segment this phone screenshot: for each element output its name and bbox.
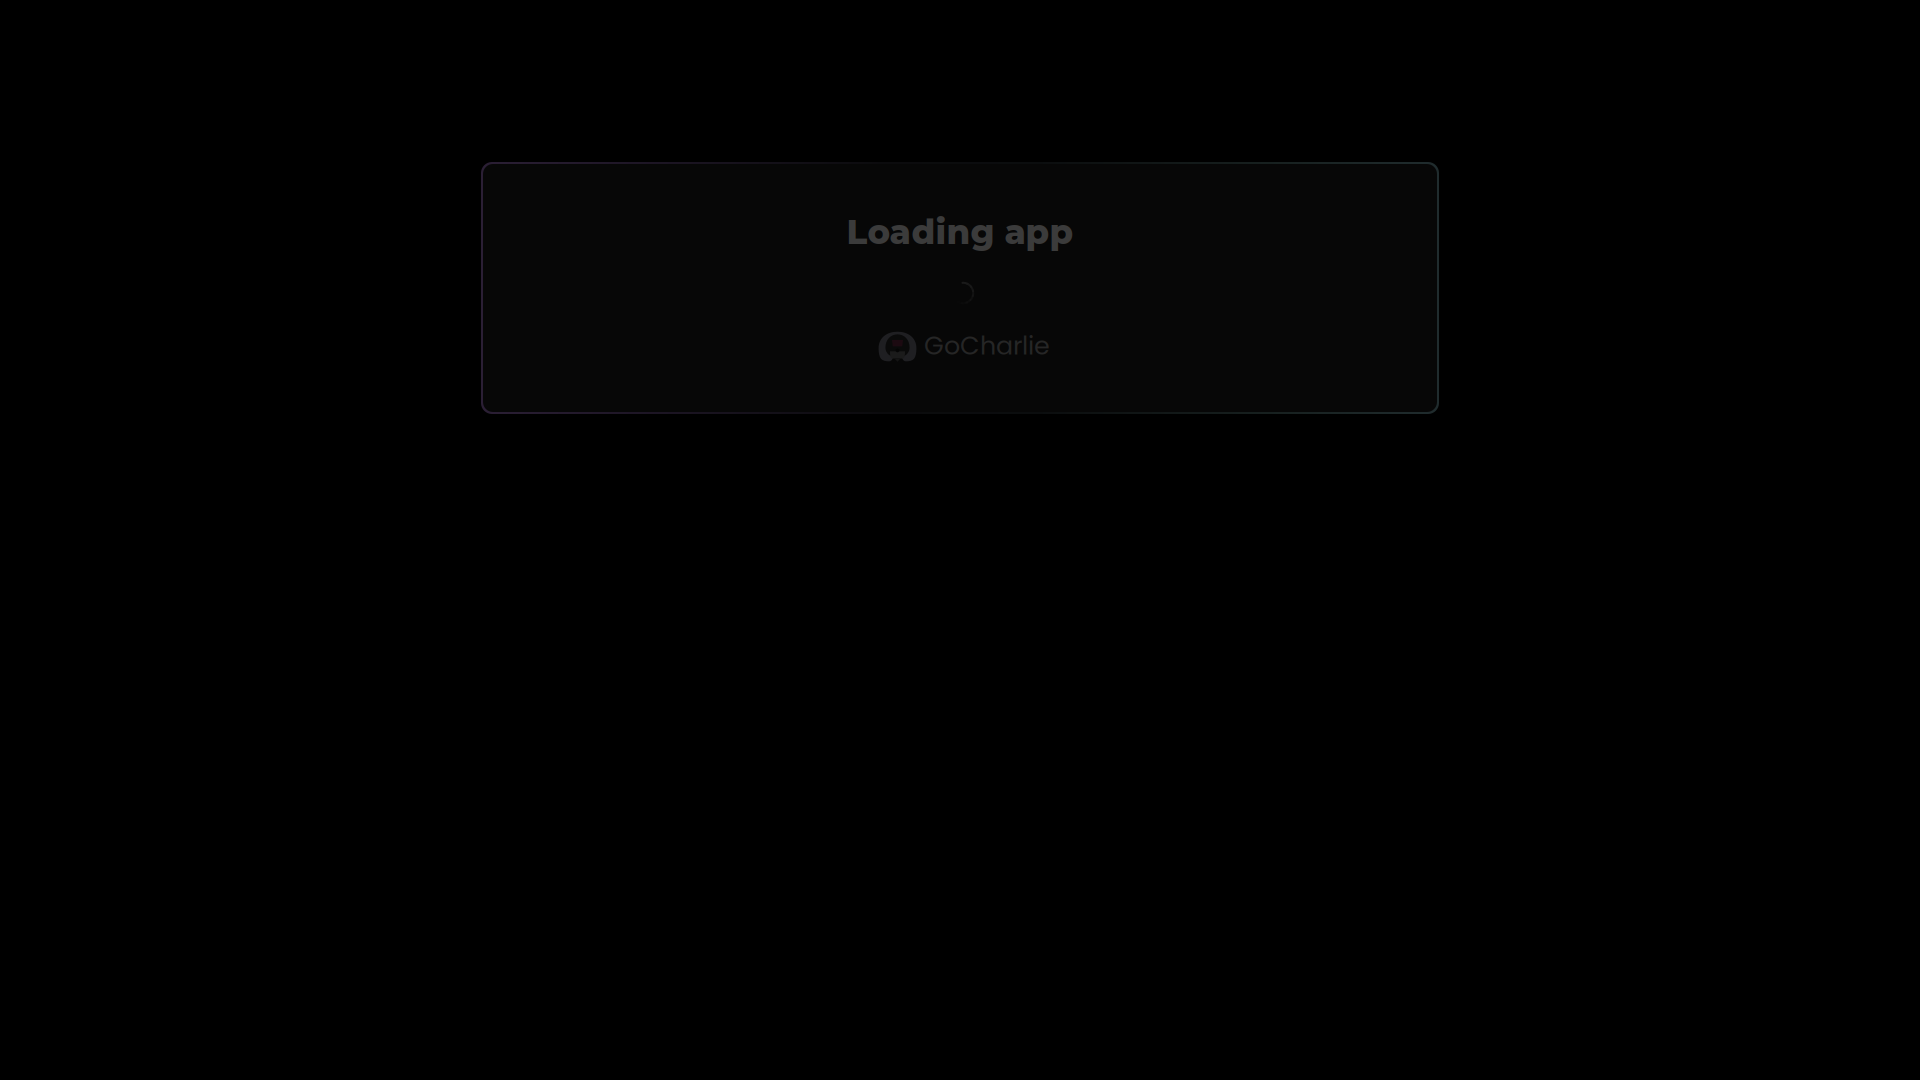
staticText: GoCharlie <box>924 328 1050 363</box>
staticText: Loading app <box>846 211 1073 252</box>
